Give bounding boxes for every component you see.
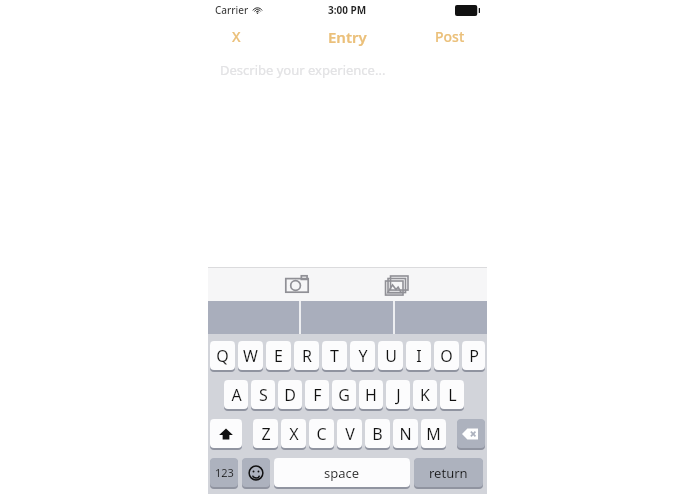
button[interactable]: U <box>378 341 403 370</box>
staticText: Describe your experience... <box>220 61 386 79</box>
other: Emoji <box>242 458 270 489</box>
button[interactable]: O <box>434 341 459 370</box>
button[interactable]: D <box>278 380 302 409</box>
button[interactable]: R <box>294 341 319 370</box>
button[interactable]: P <box>462 341 485 370</box>
button[interactable]: 123 <box>210 458 238 487</box>
button[interactable]: I <box>406 341 431 370</box>
staticText: Z <box>261 423 271 445</box>
button[interactable]: B <box>365 419 390 448</box>
button[interactable]: G <box>332 380 356 409</box>
staticText: Y <box>358 345 368 367</box>
staticText: N <box>399 423 412 445</box>
staticText: L <box>448 384 457 406</box>
button[interactable]: Entry <box>318 22 377 52</box>
button[interactable] <box>210 419 242 448</box>
staticText: C <box>316 423 327 445</box>
staticText: S <box>259 384 268 406</box>
other: Backspace <box>457 419 485 450</box>
staticText: U <box>385 345 397 367</box>
staticText: Q <box>216 345 229 367</box>
button[interactable]: C <box>309 419 334 448</box>
staticText: Entry <box>328 27 367 47</box>
staticText: space <box>324 464 360 482</box>
other: Shift <box>210 419 242 450</box>
staticText: K <box>420 384 430 406</box>
staticText: A <box>231 384 242 406</box>
button[interactable]: Y <box>350 341 375 370</box>
button[interactable]: S <box>251 380 275 409</box>
button[interactable]: M <box>421 419 446 448</box>
button[interactable]: Q <box>210 341 235 370</box>
staticText: O <box>440 345 453 367</box>
staticText: W <box>243 345 258 367</box>
staticText: Post <box>435 27 465 46</box>
staticText: 123 <box>215 465 234 480</box>
button[interactable]: N <box>393 419 418 448</box>
staticText: H <box>365 384 377 406</box>
staticText: V <box>345 423 355 445</box>
button[interactable]: Z <box>253 419 278 448</box>
button[interactable] <box>242 458 270 487</box>
staticText: X <box>289 423 299 445</box>
staticText: T <box>330 345 339 367</box>
button[interactable]: E <box>266 341 291 370</box>
staticText: E <box>274 345 283 367</box>
staticText: F <box>313 384 322 406</box>
staticText: D <box>284 384 296 406</box>
button[interactable]: space <box>274 458 410 487</box>
staticText: P <box>469 345 479 367</box>
button[interactable]: L <box>440 380 464 409</box>
staticText: B <box>372 423 383 445</box>
staticText: M <box>426 423 441 445</box>
button[interactable]: J <box>386 380 410 409</box>
staticText: G <box>338 384 350 406</box>
button[interactable]: X <box>281 419 306 448</box>
button[interactable]: V <box>337 419 362 448</box>
button[interactable]: Choose photo <box>380 267 414 301</box>
button[interactable]: T <box>322 341 347 370</box>
button[interactable]: A <box>224 380 248 409</box>
button[interactable]: Post <box>429 22 471 51</box>
staticText: R <box>302 345 312 367</box>
button[interactable]: return <box>414 458 483 487</box>
staticText: X <box>232 27 241 46</box>
staticText: Carrier <box>215 3 249 17</box>
button[interactable]: K <box>413 380 437 409</box>
staticText: J <box>396 384 401 406</box>
staticText: 3:00 PM <box>328 3 367 17</box>
staticText: return <box>429 464 468 482</box>
staticText: I <box>416 345 422 367</box>
button[interactable]: Take photo <box>280 267 314 301</box>
button[interactable] <box>457 419 485 448</box>
button[interactable]: H <box>359 380 383 409</box>
button[interactable]: X <box>224 22 249 51</box>
button[interactable]: W <box>238 341 263 370</box>
button[interactable]: F <box>305 380 329 409</box>
